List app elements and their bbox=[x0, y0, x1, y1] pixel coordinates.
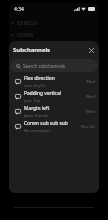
button[interactable]: COMM bbox=[9, 29, 99, 41]
button[interactable]: Margin left bbox=[9, 104, 99, 119]
staticText: Wed bbox=[86, 94, 95, 100]
staticText: Search subchannels bbox=[23, 63, 65, 69]
staticText: Wed bbox=[86, 79, 95, 85]
staticText: COMM bbox=[17, 32, 34, 39]
staticText: you: Top bbox=[24, 98, 41, 104]
staticText: Auto friends bbox=[24, 113, 49, 119]
staticText: GENESIS bbox=[17, 20, 38, 27]
staticText: Nov 22 bbox=[81, 124, 95, 130]
staticText: No messages bbox=[24, 128, 51, 134]
button[interactable]: Comm sub sub sub bbox=[9, 119, 99, 134]
staticText: Wed bbox=[86, 109, 95, 115]
staticText: Margin left bbox=[24, 105, 50, 112]
staticText: Padding vertical bbox=[24, 90, 61, 97]
button[interactable]: Close bbox=[85, 44, 97, 56]
staticText: sort: Scylla bbox=[24, 83, 45, 89]
button[interactable]: Padding vertical bbox=[9, 89, 99, 104]
button[interactable]: Search subchannels bbox=[10, 59, 98, 72]
staticText: Comm sub sub sub bbox=[24, 120, 68, 127]
staticText: Flex direction bbox=[24, 75, 55, 82]
staticText: 4:34 bbox=[14, 6, 24, 13]
button[interactable]: Flex direction bbox=[9, 74, 99, 89]
button[interactable]: GENESIS bbox=[9, 17, 99, 29]
staticText: Subchannels bbox=[13, 46, 51, 54]
